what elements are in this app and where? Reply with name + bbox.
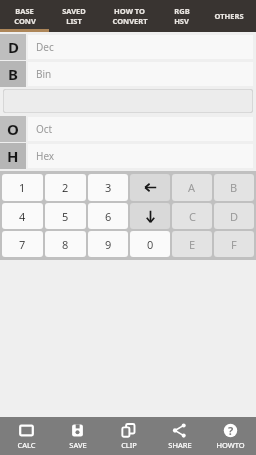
- staticText: Oct: [36, 122, 53, 136]
- button[interactable]: E: [172, 231, 212, 257]
- button[interactable]: SAVED: [49, 0, 98, 32]
- button[interactable]: 0: [130, 231, 170, 257]
- button[interactable]: 9: [88, 231, 128, 257]
- staticText: CONVERT: [112, 16, 148, 26]
- staticText: B: [8, 64, 18, 84]
- staticText: H: [7, 146, 19, 166]
- staticText: 4: [19, 209, 26, 224]
- staticText: CLIP: [121, 440, 137, 450]
- staticText: 7: [19, 237, 26, 252]
- button[interactable]: Backspace: [130, 174, 170, 201]
- button[interactable]: B: [214, 174, 254, 201]
- staticText: 9: [105, 237, 112, 252]
- staticText: HOWTO: [216, 440, 245, 450]
- staticText: O: [7, 119, 19, 139]
- staticText: RGB: [174, 6, 190, 16]
- staticText: HSV: [174, 16, 189, 26]
- staticText: SAVE: [69, 440, 87, 450]
- staticText: CONV: [14, 16, 36, 26]
- staticText: F: [231, 237, 237, 252]
- staticText: C: [189, 209, 196, 224]
- button[interactable]: O: [0, 116, 256, 142]
- staticText: Bin: [36, 67, 52, 81]
- button[interactable]: SHARE: [154, 417, 205, 455]
- button[interactable]: 6: [88, 203, 128, 229]
- staticText: Hex: [36, 149, 55, 163]
- button[interactable]: Enter: [130, 203, 170, 229]
- staticText: B: [230, 180, 238, 195]
- staticText: 0: [147, 237, 154, 252]
- button[interactable]: CALC: [0, 417, 52, 455]
- staticText: SAVED: [62, 6, 86, 16]
- button[interactable]: BASE: [0, 0, 49, 32]
- button[interactable]: 2: [45, 174, 86, 201]
- button[interactable]: CLIP: [103, 417, 154, 455]
- button[interactable]: 8: [45, 231, 86, 257]
- staticText: HOW TO: [114, 6, 145, 16]
- staticText: LIST: [66, 16, 82, 26]
- staticText: D: [230, 209, 239, 224]
- staticText: 2: [62, 180, 69, 195]
- button[interactable]: ?: [205, 417, 256, 455]
- button[interactable]: H: [0, 143, 256, 169]
- staticText: BASE: [15, 6, 34, 16]
- staticText: ?: [228, 423, 234, 438]
- staticText: 1: [19, 180, 26, 195]
- button[interactable]: 1: [2, 174, 43, 201]
- button[interactable]: [3, 89, 253, 113]
- staticText: OTHERS: [214, 11, 244, 21]
- button[interactable]: D: [0, 34, 256, 60]
- staticText: E: [189, 237, 196, 252]
- button[interactable]: C: [172, 203, 212, 229]
- staticText: D: [8, 37, 19, 57]
- button[interactable]: F: [214, 231, 254, 257]
- staticText: CALC: [17, 440, 36, 450]
- button[interactable]: 7: [2, 231, 43, 257]
- staticText: Dec: [36, 40, 54, 54]
- button[interactable]: D: [214, 203, 254, 229]
- staticText: 8: [62, 237, 69, 252]
- staticText: 6: [105, 209, 112, 224]
- button[interactable]: 3: [88, 174, 128, 201]
- staticText: SHARE: [168, 440, 192, 450]
- button[interactable]: 4: [2, 203, 43, 229]
- staticText: 3: [105, 180, 112, 195]
- staticText: A: [188, 180, 196, 195]
- button[interactable]: 5: [45, 203, 86, 229]
- button[interactable]: SAVE: [52, 417, 103, 455]
- button[interactable]: RGB: [161, 0, 202, 32]
- button[interactable]: A: [172, 174, 212, 201]
- staticText: 5: [62, 209, 69, 224]
- button[interactable]: HOW TO: [98, 0, 161, 32]
- button[interactable]: B: [0, 61, 256, 87]
- button[interactable]: OTHERS: [202, 0, 256, 32]
